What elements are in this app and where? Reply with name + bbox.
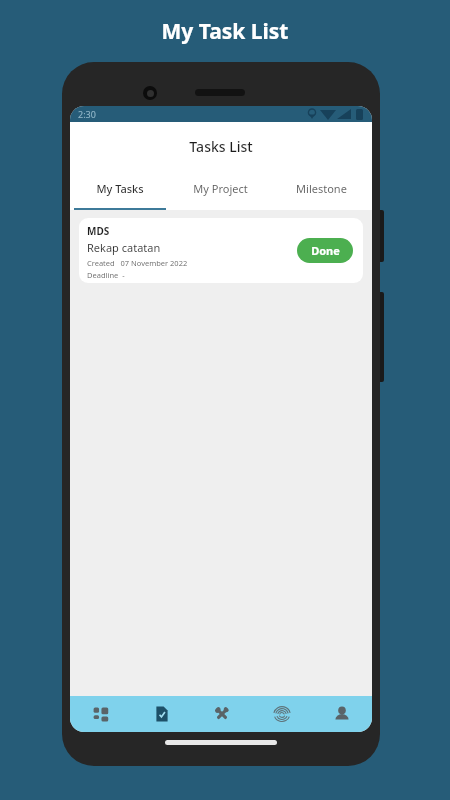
staticText: Created 07 November 2022 (87, 258, 188, 268)
button[interactable]: Profile (312, 696, 372, 732)
button[interactable]: Done (297, 238, 353, 263)
button[interactable]: Dashboard (70, 696, 131, 732)
staticText: My Project (193, 181, 248, 196)
button[interactable]: My Tasks (70, 170, 170, 210)
staticText: 2:30 (78, 108, 96, 120)
button[interactable]: Tasks (131, 696, 192, 732)
button[interactable]: Milestone (271, 170, 372, 210)
staticText: My Task List (0, 17, 450, 46)
staticText: MDS (87, 224, 110, 238)
staticText: Done (311, 243, 340, 258)
staticText: Milestone (296, 181, 347, 196)
button[interactable]: My Project (170, 170, 271, 210)
staticText: Deadline - (87, 270, 125, 280)
button[interactable]: Fingerprint (252, 696, 312, 732)
staticText: Rekap catatan (87, 240, 161, 255)
button[interactable]: Tools (192, 696, 252, 732)
staticText: Tasks List (189, 137, 253, 156)
staticText: My Tasks (96, 181, 144, 196)
button[interactable]: MDS (79, 218, 363, 283)
